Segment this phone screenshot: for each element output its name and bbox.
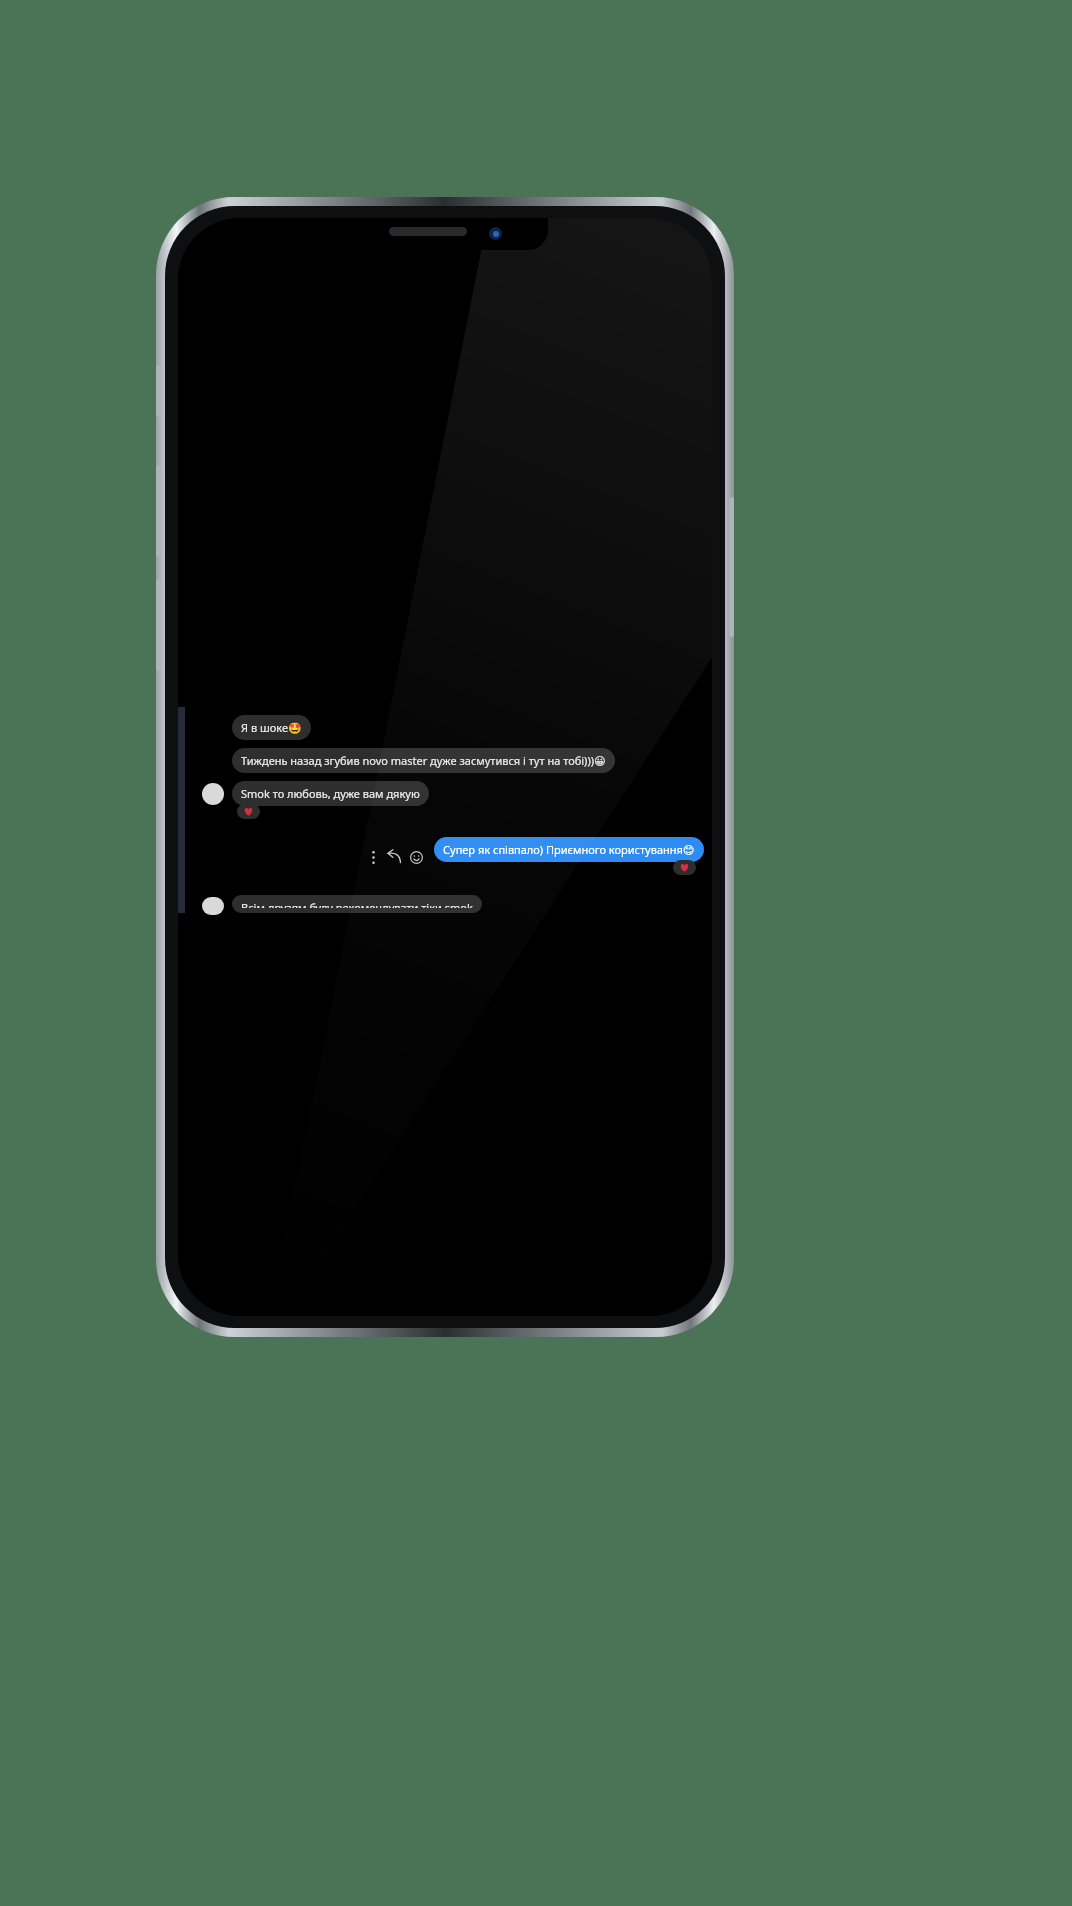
button[interactable]: React	[406, 847, 426, 867]
button[interactable]: Я в шоке🤩	[232, 715, 311, 740]
staticText: Smok то любовь, дуже вам дякую	[241, 786, 420, 801]
button[interactable]: Smok то любовь, дуже вам дякую	[232, 781, 429, 806]
button[interactable]: Reply	[384, 847, 404, 867]
staticText: Всім друзям буду рекомендувати тіки smok	[241, 900, 473, 908]
button[interactable]: Love reaction	[673, 860, 696, 875]
staticText: Супер як співпало) Приємного користуванн…	[443, 842, 695, 857]
staticText: Я в шоке🤩	[241, 720, 302, 735]
button[interactable]: More options	[364, 848, 382, 866]
button[interactable]: Супер як співпало) Приємного користуванн…	[434, 837, 704, 862]
staticText: Тиждень назад згубив novo master дуже за…	[241, 753, 606, 768]
button[interactable]: Всім друзям буду рекомендувати тіки smok	[232, 895, 482, 913]
button[interactable]: Love reaction	[237, 804, 260, 819]
button[interactable]: Тиждень назад згубив novo master дуже за…	[232, 748, 615, 773]
